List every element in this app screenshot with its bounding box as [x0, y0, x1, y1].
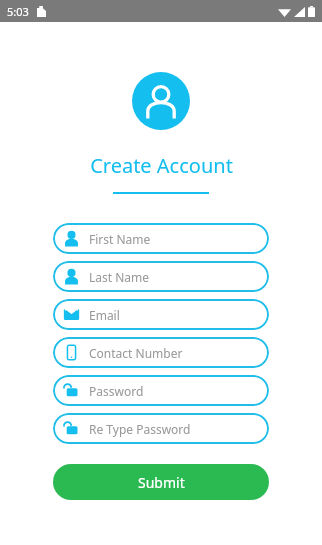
staticText: Submit — [138, 473, 185, 492]
staticText: Last Name — [89, 269, 150, 285]
button[interactable]: Contact Number — [53, 337, 269, 368]
staticText: Create Account — [90, 152, 233, 179]
staticText: 5:03 — [7, 4, 29, 19]
button[interactable]: Password — [53, 375, 269, 406]
button[interactable]: Submit — [53, 464, 269, 500]
staticText: Re Type Password — [89, 421, 191, 437]
button[interactable]: Re Type Password — [53, 413, 269, 444]
staticText: Email — [89, 307, 120, 323]
button[interactable]: Email — [53, 299, 269, 330]
staticText: Contact Number — [89, 345, 183, 361]
staticText: Password — [89, 383, 144, 399]
button[interactable]: Last Name — [53, 261, 269, 292]
button[interactable]: First Name — [53, 223, 269, 254]
staticText: First Name — [89, 231, 151, 247]
